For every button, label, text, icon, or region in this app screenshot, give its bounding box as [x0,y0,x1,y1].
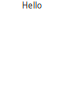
staticText: Hello [22,0,42,11]
